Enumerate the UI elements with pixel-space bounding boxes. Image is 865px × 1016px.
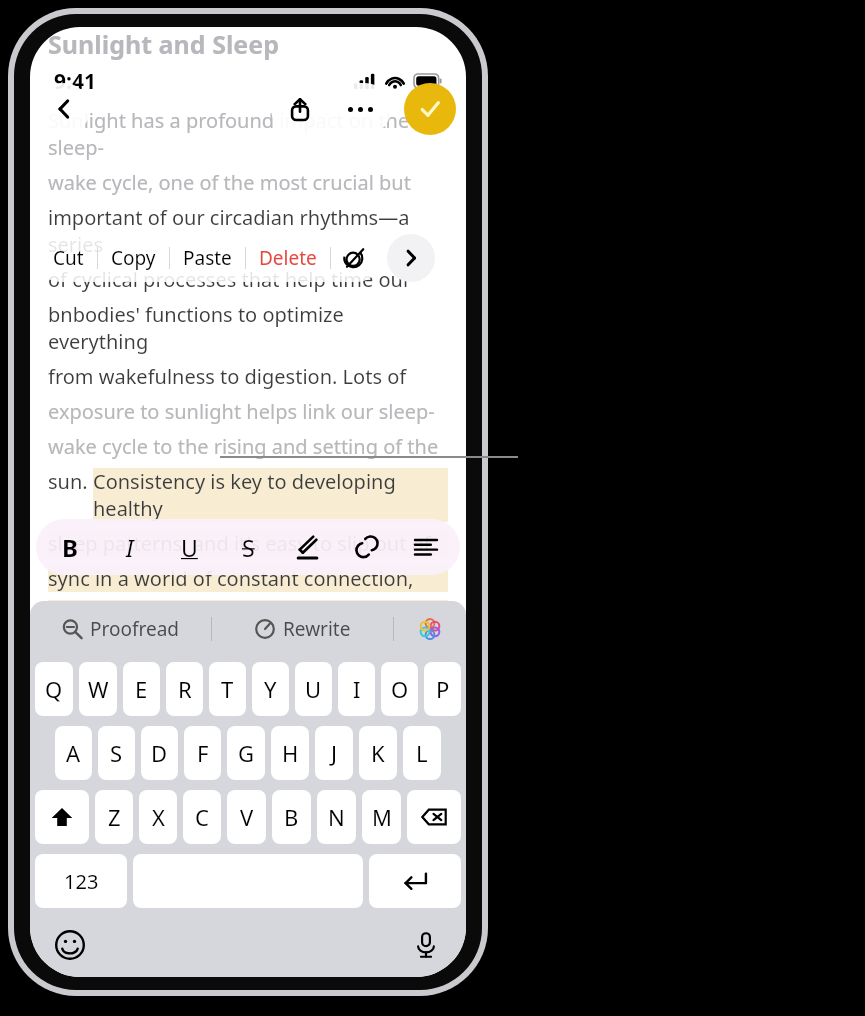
- staticText: S: [110, 738, 123, 768]
- button[interactable]: Emoji: [48, 923, 92, 967]
- staticText: W: [88, 674, 109, 704]
- button[interactable]: C: [183, 790, 221, 844]
- button[interactable]: Paragraph style: [401, 519, 451, 575]
- button[interactable]: 123: [35, 854, 127, 908]
- button[interactable]: Back: [38, 83, 90, 135]
- staticText: Copy: [111, 245, 156, 271]
- staticText: A: [66, 738, 81, 768]
- staticText: I: [353, 674, 361, 704]
- staticText: Paste: [183, 245, 232, 271]
- button[interactable]: More options: [329, 83, 391, 135]
- staticText: N: [328, 802, 345, 832]
- staticText: T: [221, 674, 234, 704]
- button[interactable]: A: [55, 726, 92, 780]
- button[interactable]: W: [79, 662, 117, 716]
- staticText: K: [371, 738, 385, 768]
- button[interactable]: Share: [271, 83, 329, 135]
- button[interactable]: Proofread: [30, 601, 211, 657]
- button[interactable]: Done: [404, 83, 456, 135]
- staticText: sun.: [48, 468, 93, 495]
- button[interactable]: Italic: [105, 519, 155, 575]
- staticText: where many are used to working across: [48, 600, 422, 627]
- staticText: Cut: [53, 245, 84, 271]
- staticText: B: [62, 531, 78, 564]
- staticText: U: [181, 532, 198, 563]
- button[interactable]: N: [317, 790, 356, 844]
- button[interactable]: Cut: [40, 234, 97, 282]
- staticText: U: [305, 674, 322, 704]
- staticText: important of our circadian rhythms—a ser…: [48, 204, 448, 258]
- button[interactable]: X: [139, 790, 177, 844]
- button[interactable]: Copy: [98, 234, 169, 282]
- button[interactable]: M: [362, 790, 401, 844]
- staticText: G: [238, 738, 255, 768]
- staticText: I: [126, 532, 134, 563]
- staticText: O: [391, 674, 409, 704]
- button[interactable]: J: [315, 726, 353, 780]
- button[interactable]: U: [295, 662, 332, 716]
- staticText: E: [135, 674, 148, 704]
- button[interactable]: Y: [252, 662, 289, 716]
- staticText: X: [152, 802, 165, 832]
- staticText: bnbodies' functions to optimize everythi…: [48, 301, 448, 355]
- button[interactable]: More actions: [387, 234, 435, 282]
- staticText: Delete: [259, 245, 317, 271]
- staticText: S: [242, 532, 255, 563]
- button[interactable]: D: [141, 726, 178, 780]
- staticText: J: [331, 738, 338, 768]
- staticText: Sunlight and Sleep: [48, 27, 280, 61]
- staticText: H: [282, 738, 299, 768]
- button[interactable]: F: [184, 726, 221, 780]
- button[interactable]: I: [338, 662, 375, 716]
- button[interactable]: K: [359, 726, 397, 780]
- staticText: Z: [108, 802, 121, 832]
- staticText: M: [372, 802, 392, 832]
- staticText: Y: [264, 674, 277, 704]
- button[interactable]: H: [271, 726, 309, 780]
- staticText: C: [195, 802, 209, 832]
- button[interactable]: Q: [35, 662, 73, 716]
- button[interactable]: S: [98, 726, 135, 780]
- button[interactable]: T: [209, 662, 246, 716]
- button[interactable]: R: [166, 662, 203, 716]
- button[interactable]: Underline: [164, 519, 214, 575]
- staticText: V: [240, 802, 254, 832]
- staticText: P: [436, 674, 450, 704]
- staticText: exposure to sunlight helps link our slee…: [48, 398, 435, 425]
- button[interactable]: Paste: [170, 234, 245, 282]
- button[interactable]: P: [424, 662, 461, 716]
- button[interactable]: O: [381, 662, 418, 716]
- button[interactable]: Dictate: [404, 923, 448, 967]
- staticText: wake cycle, one of the most crucial but: [48, 169, 411, 196]
- staticText: multiple timezones.: [48, 635, 233, 662]
- button[interactable]: Bold: [45, 519, 95, 575]
- button[interactable]: Z: [95, 790, 133, 844]
- button[interactable]: Writing tools: [331, 234, 377, 282]
- staticText: L: [416, 738, 428, 768]
- staticText: of cyclical processes that help time our: [48, 266, 412, 293]
- button[interactable]: Link: [342, 519, 392, 575]
- button[interactable]: Rewrite: [212, 601, 393, 657]
- staticText: 123: [64, 868, 99, 895]
- staticText: wake cycle to the rising and setting of …: [48, 433, 439, 460]
- button[interactable]: B: [272, 790, 311, 844]
- button[interactable]: Highlight: [282, 519, 332, 575]
- button[interactable]: Return: [369, 854, 461, 908]
- button[interactable]: Delete: [246, 234, 330, 282]
- staticText: Q: [45, 674, 63, 704]
- button[interactable]: G: [227, 726, 265, 780]
- staticText: from wakefulness to digestion. Lots of: [48, 363, 407, 390]
- staticText: B: [284, 802, 299, 832]
- staticText: D: [151, 738, 168, 768]
- staticText: Proofread: [90, 616, 180, 642]
- button[interactable]: L: [403, 726, 441, 780]
- button[interactable]: Apple Intelligence: [394, 601, 466, 657]
- button[interactable]: V: [227, 790, 266, 844]
- staticText: F: [197, 738, 209, 768]
- staticText: Consistency is key to developing healthy: [93, 468, 448, 522]
- button[interactable]: Strikethrough: [223, 519, 273, 575]
- button[interactable]: E: [123, 662, 160, 716]
- button[interactable]: Backspace: [407, 790, 461, 844]
- button[interactable]: Shift: [35, 790, 89, 844]
